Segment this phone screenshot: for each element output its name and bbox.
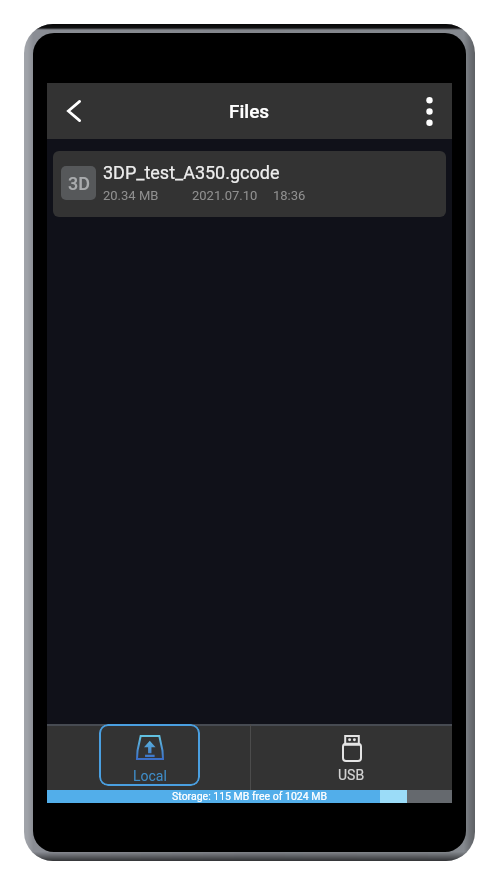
staticText: 3DP_test_A350.gcode [103, 162, 280, 183]
button[interactable]: 3D [53, 151, 446, 217]
staticText: 3D [68, 173, 90, 194]
button[interactable]: Back [47, 83, 101, 139]
staticText: 2021.07.10 [192, 188, 258, 203]
button[interactable]: Local [99, 724, 200, 786]
staticText: Local [133, 768, 167, 784]
staticText: 18:36 [273, 188, 306, 203]
staticText: Storage: 115 MB free of 1024 MB [172, 790, 327, 802]
staticText: Files [229, 100, 270, 122]
staticText: USB [338, 767, 365, 783]
button[interactable]: More options [406, 83, 452, 139]
button[interactable]: USB [301, 724, 402, 786]
staticText: 20.34 MB [103, 188, 159, 203]
